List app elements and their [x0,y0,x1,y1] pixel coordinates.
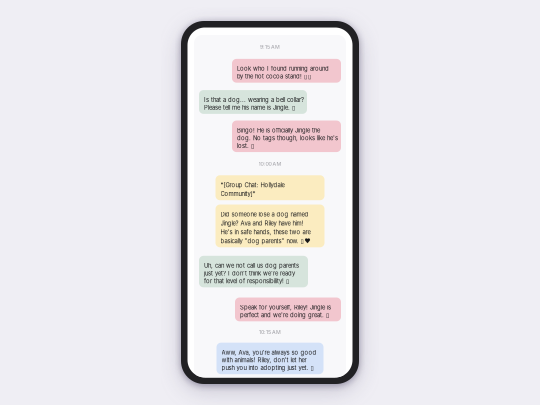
staticText: Speak for yourself, Riley! Jingle is per… [240,304,331,319]
button[interactable]: Uh, can we not call us dog parents just … [199,256,341,287]
button[interactable]: Bingo! He is officially Jingle the dog. … [199,121,341,152]
staticText: Bingo! He is officially Jingle the dog. … [237,127,338,149]
staticText: 10:00 AM [258,161,281,167]
button[interactable]: Is that a dog... wearing a bell collar? … [199,90,341,114]
staticText: Look who I found running around by the h… [237,65,329,80]
staticText: 10:15 AM [259,329,281,335]
staticText: Did someone lose a dog named Jingle? Ava… [220,211,310,245]
staticText: Uh, can we not call us dog parents just … [204,262,299,285]
staticText: Is that a dog... wearing a bell collar? … [204,96,304,111]
button[interactable]: Aww, Ava, you're always so good with ani… [199,343,341,374]
button[interactable]: Look who I found running around by the h… [199,59,341,83]
staticText: 9:15 AM [260,44,280,50]
button[interactable]: Did someone lose a dog named Jingle? Ava… [199,204,341,247]
button[interactable]: Speak for yourself, Riley! Jingle is per… [199,297,341,321]
staticText: Aww, Ava, you're always so good with ani… [221,349,316,371]
staticText: *[Group Chat: Hollydale Community]* [220,181,284,197]
button[interactable]: *[Group Chat: Hollydale Community]* [199,175,341,200]
